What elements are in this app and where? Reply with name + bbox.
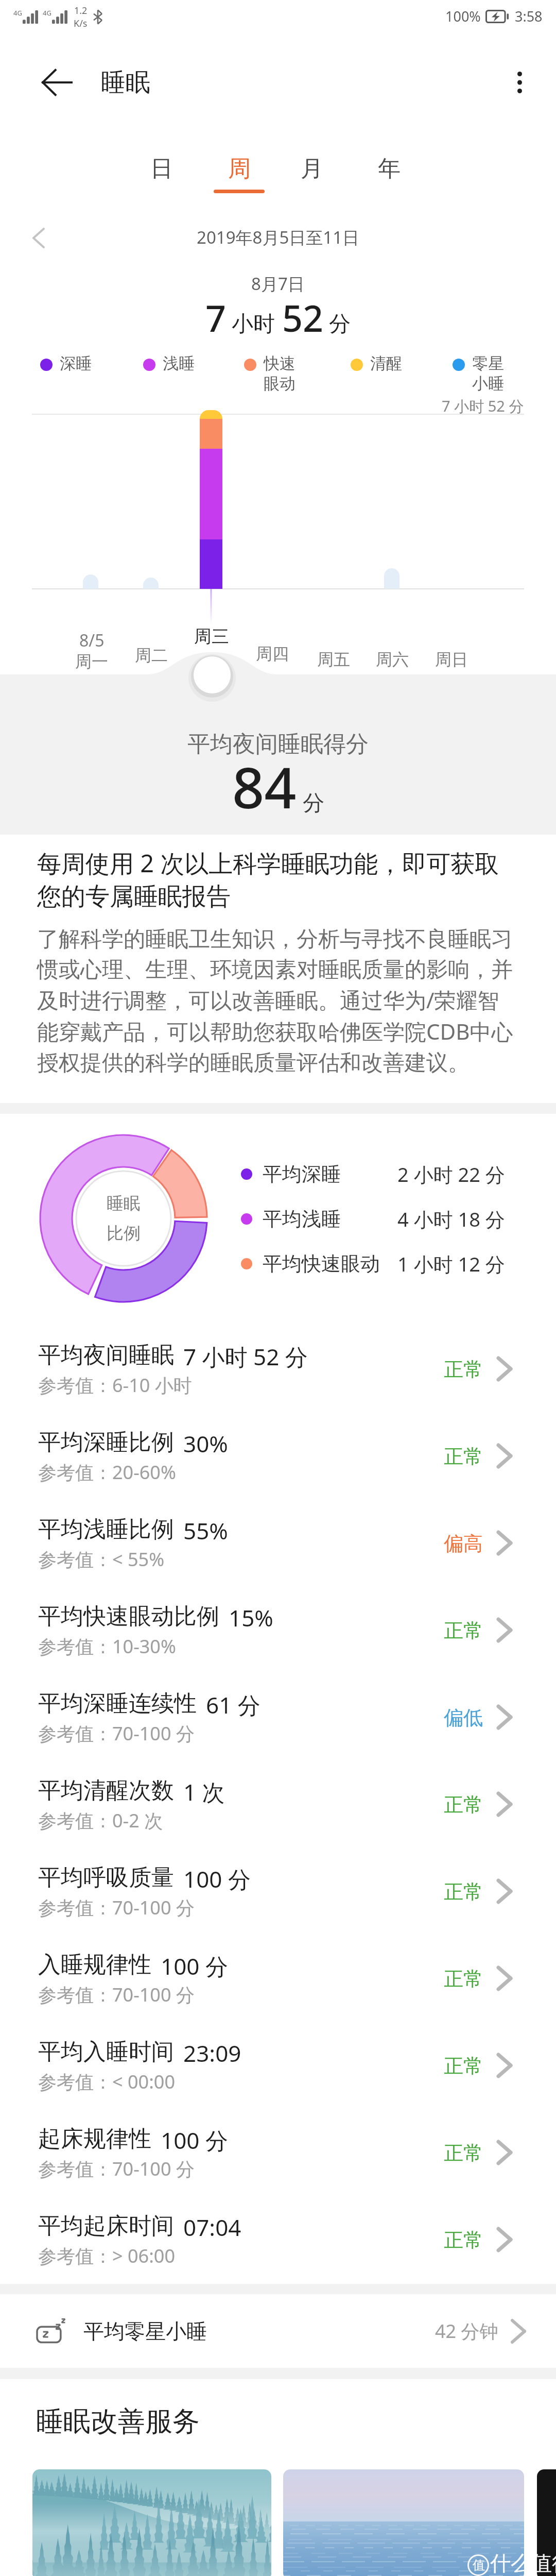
staticText: 参考值：10-30% (38, 1634, 176, 1659)
staticText: 42 分钟 (435, 2318, 498, 2344)
staticText: 52 (282, 293, 324, 342)
staticText: 1.2 (74, 4, 88, 17)
staticText: 参考值：70-100 分 (38, 1895, 195, 1920)
staticText: 平均夜间睡眠 (38, 1341, 174, 1369)
button[interactable]: Ocean sleep program (283, 2469, 524, 2576)
staticText: 周三 (194, 625, 229, 648)
staticText: 100 分 (161, 1951, 228, 1981)
staticText: 参考值：20-60% (38, 1460, 176, 1485)
button[interactable]: 周五 (309, 649, 358, 678)
staticText: 8/5 (79, 629, 105, 652)
staticText: 平均夜间睡眠得分 (187, 730, 369, 758)
staticText: 平均清醒次数 (38, 1776, 174, 1805)
staticText: 平均深睡 (263, 1162, 341, 1187)
staticText: 周六 (376, 649, 409, 670)
staticText: 值 (473, 2557, 485, 2573)
button[interactable]: 平均浅睡比例 (0, 1496, 556, 1583)
staticText: 平均快速眼动 (263, 1251, 380, 1276)
button[interactable]: 周日 (427, 649, 476, 678)
staticText: 平均入睡时间 (38, 2038, 174, 2066)
staticText: 日 (150, 155, 173, 183)
button[interactable]: More options (497, 60, 542, 105)
staticText: 平均零星小睡 (83, 2318, 207, 2344)
staticText: 了解科学的睡眠卫生知识，分析与寻找不良睡眠习惯或心理、生理、环境因素对睡眠质量的… (37, 926, 518, 1077)
button[interactable]: Previous week (19, 218, 58, 258)
button[interactable]: 周二 (127, 645, 176, 674)
button[interactable]: Back (33, 59, 80, 106)
staticText: 分 (329, 311, 351, 338)
staticText: 分 (303, 790, 324, 817)
button[interactable]: 年 (357, 155, 421, 208)
staticText: 1 次 (183, 1776, 225, 1807)
staticText: 周四 (256, 643, 289, 664)
button[interactable]: 日 (130, 155, 194, 208)
staticText: 偏低 (444, 1705, 483, 1730)
staticText: 小时 (232, 311, 275, 338)
button[interactable]: 平均零星小睡 (0, 2294, 556, 2368)
staticText: 小睡 (472, 374, 504, 394)
button[interactable]: More programs (537, 2469, 556, 2576)
button[interactable]: 入睡规律性 (0, 1931, 556, 2019)
staticText: 年 (378, 155, 401, 183)
staticText: 3:58 (515, 7, 543, 26)
staticText: 平均快速眼动比例 (38, 1602, 219, 1631)
button[interactable]: 平均夜间睡眠 (0, 1322, 556, 1409)
staticText: 入睡规律性 (38, 1951, 151, 1979)
staticText: 睡眠 (101, 67, 150, 98)
staticText: K/s (74, 17, 88, 30)
staticText: 零星 (472, 353, 504, 374)
button[interactable]: 周四 (248, 643, 297, 672)
staticText: 2 小时 22 分 (397, 1161, 505, 1188)
staticText: 参考值：70-100 分 (38, 2156, 195, 2181)
staticText: 正常 (444, 1792, 483, 1817)
staticText: 7 (205, 293, 227, 342)
staticText: 正常 (444, 1618, 483, 1643)
staticText: 周五 (317, 649, 350, 670)
staticText: 周日 (435, 649, 468, 670)
staticText: 周 (228, 155, 251, 183)
button[interactable]: 周六 (368, 649, 417, 678)
button[interactable]: 周一 (67, 651, 116, 680)
staticText: 正常 (444, 1357, 483, 1382)
staticText: 平均呼吸质量 (38, 1863, 174, 1892)
staticText: 参考值：70-100 分 (38, 1982, 195, 2007)
button[interactable]: 平均清醒次数 (0, 1757, 556, 1844)
button[interactable]: Forest sleep program (32, 2469, 271, 2576)
staticText: 100 分 (161, 2125, 228, 2156)
staticText: 正常 (444, 1444, 483, 1469)
staticText: 参考值：< 55% (38, 1547, 165, 1572)
button[interactable]: 平均深睡连续性 (0, 1670, 556, 1757)
staticText: 参考值：0-2 次 (38, 1808, 163, 1833)
staticText: 参考值：< 00:00 (38, 2069, 175, 2094)
button[interactable]: 周三 (187, 625, 236, 654)
staticText: 84 (232, 748, 297, 824)
button[interactable]: 起床规律性 (0, 2106, 556, 2193)
staticText: 15% (229, 1602, 273, 1633)
staticText: 快速 (264, 353, 296, 374)
button[interactable]: 月 (280, 155, 344, 208)
staticText: 周一 (75, 651, 108, 672)
staticText: 4G (13, 8, 22, 18)
button[interactable]: 平均入睡时间 (0, 2019, 556, 2106)
staticText: 参考值：> 06:00 (38, 2243, 175, 2268)
staticText: 起床规律性 (38, 2125, 151, 2153)
button[interactable]: 平均快速眼动比例 (0, 1583, 556, 1670)
staticText: 100% (445, 7, 481, 26)
button[interactable]: 平均起床时间 (0, 2193, 556, 2280)
staticText: 7 小时 52 分 (442, 396, 524, 416)
staticText: 正常 (444, 2228, 483, 2252)
button[interactable]: 平均呼吸质量 (0, 1844, 556, 1931)
staticText: 参考值：6-10 小时 (38, 1372, 192, 1398)
staticText: 4G (43, 8, 51, 18)
staticText: 2019年8月5日至11日 (197, 226, 360, 249)
staticText: 平均深睡比例 (38, 1428, 174, 1456)
staticText: 周二 (135, 645, 168, 666)
staticText: 8月7日 (251, 272, 305, 295)
staticText: 61 分 (206, 1689, 260, 1720)
staticText: 1 小时 12 分 (397, 1250, 505, 1277)
staticText: 07:04 (183, 2212, 241, 2243)
staticText: 正常 (444, 2141, 483, 2165)
button[interactable]: 平均深睡比例 (0, 1409, 556, 1496)
button[interactable]: 周 (207, 155, 271, 208)
staticText: 平均浅睡 (263, 1207, 341, 1231)
